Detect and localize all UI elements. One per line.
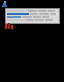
button[interactable]: Alert indicators — [5, 23, 13, 29]
button[interactable]: App logo — [2, 0, 9, 8]
button[interactable] — [6, 9, 59, 23]
button[interactable] — [7, 10, 58, 12]
button[interactable] — [7, 13, 58, 15]
button[interactable] — [7, 19, 58, 21]
button[interactable] — [7, 16, 58, 18]
